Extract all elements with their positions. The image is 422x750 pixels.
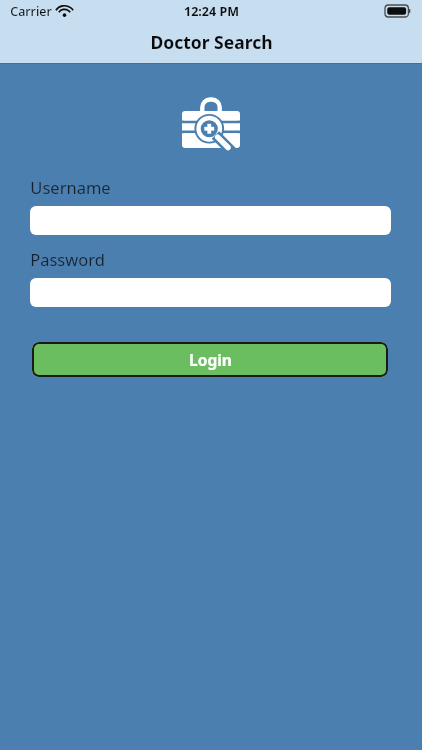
staticText: Password xyxy=(30,248,105,270)
staticText: Username xyxy=(30,176,111,198)
button[interactable]: Text input xyxy=(30,206,391,235)
staticText: Login xyxy=(189,349,232,370)
button[interactable]: Text input xyxy=(30,278,391,307)
staticText: Carrier xyxy=(10,3,52,20)
button[interactable]: Login xyxy=(32,342,388,377)
other: Doctor search logo xyxy=(182,98,240,148)
staticText: Doctor Search xyxy=(150,30,273,54)
staticText: 12:24 PM xyxy=(184,3,239,20)
